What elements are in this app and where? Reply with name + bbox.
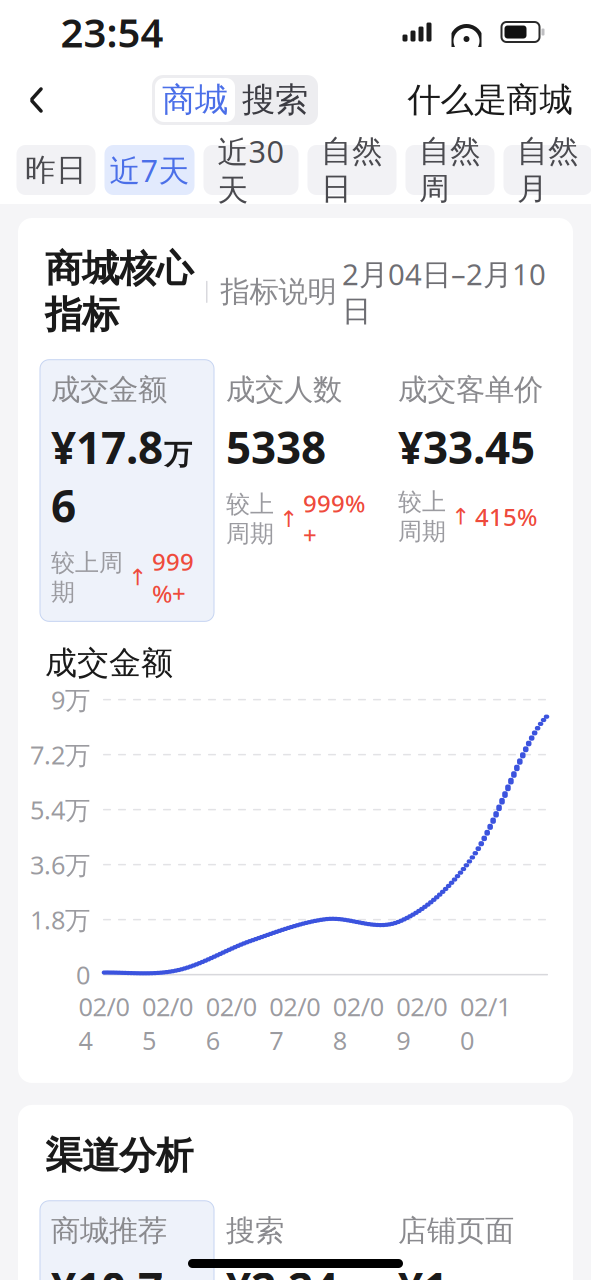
staticText: 999%+ <box>303 487 365 551</box>
staticText: 自然日 <box>321 132 383 208</box>
staticText: 7.2万 <box>30 738 90 771</box>
staticText: 1.8万 <box>30 903 90 936</box>
staticText: 02/07 <box>269 990 320 1057</box>
staticText: ¥1 <box>398 1259 448 1280</box>
button[interactable]: 返回 <box>10 74 62 126</box>
staticText: 较上周期 <box>226 490 274 549</box>
staticText: 渠道分析 <box>45 1133 193 1179</box>
button[interactable]: 近7天 <box>104 145 194 195</box>
staticText: 2月04日–2月10日 <box>342 254 546 329</box>
staticText: 搜索 <box>242 79 308 120</box>
staticText: 指标说明 <box>220 274 336 310</box>
staticText: 较上周期 <box>398 487 446 546</box>
button[interactable]: 成交金额 <box>40 360 214 621</box>
staticText: ↑ <box>279 506 298 532</box>
staticText: ¥10.76 <box>51 1259 163 1280</box>
staticText: 自然月 <box>517 132 579 208</box>
button[interactable]: 什么是商城 <box>407 74 591 126</box>
staticText: 02/08 <box>333 990 384 1057</box>
button[interactable]: 自然周 <box>405 145 494 195</box>
staticText: 0 <box>76 958 90 991</box>
staticText: ¥33.45 <box>398 418 535 476</box>
button[interactable]: 搜索 <box>235 78 315 122</box>
staticText: 999%+ <box>152 546 194 609</box>
staticText: 成交人数 <box>226 372 342 408</box>
button[interactable]: 成交人数 <box>226 372 390 551</box>
staticText: 5.4万 <box>30 793 90 826</box>
staticText: 3.6万 <box>30 848 90 881</box>
staticText: 02/09 <box>396 990 447 1057</box>
staticText: 搜索 <box>226 1213 284 1249</box>
staticText: 02/06 <box>206 990 257 1057</box>
button[interactable]: 指标说明 <box>220 274 336 310</box>
staticText: 成交客单价 <box>398 372 543 408</box>
staticText: 商城 <box>162 79 228 120</box>
staticText: 9万 <box>51 683 90 716</box>
staticText: 02/05 <box>142 990 193 1057</box>
staticText: 成交金额 <box>45 643 173 683</box>
staticText: 什么是商城 <box>407 79 572 120</box>
staticText: 较上周期 <box>51 548 123 607</box>
staticText: 成交金额 <box>51 372 167 408</box>
button[interactable]: 自然月 <box>503 145 591 195</box>
staticText: ¥2.24 <box>226 1259 338 1280</box>
staticText: 5338 <box>226 418 326 476</box>
button[interactable]: 商城 <box>155 78 235 122</box>
staticText: 23:54 <box>60 5 163 58</box>
staticText: 02/04 <box>78 990 129 1057</box>
button[interactable]: 店铺页面 <box>398 1213 562 1280</box>
button[interactable]: 自然日 <box>307 145 396 195</box>
button[interactable]: 昨日 <box>16 145 95 195</box>
staticText: ¥17.86 <box>51 418 163 535</box>
staticText: 自然周 <box>419 132 481 208</box>
staticText: 商城推荐 <box>51 1213 167 1249</box>
staticText: ↑ <box>451 504 470 529</box>
button[interactable]: 成交客单价 <box>398 372 562 546</box>
staticText: 近7天 <box>109 150 189 190</box>
button[interactable]: 商城推荐 <box>40 1201 214 1280</box>
staticText: 近30天 <box>217 131 284 209</box>
staticText: 店铺页面 <box>398 1213 514 1249</box>
staticText: 02/10 <box>460 990 511 1057</box>
staticText: ↑ <box>128 565 147 590</box>
staticText: 万 <box>164 437 192 472</box>
button[interactable]: 近30天 <box>203 145 298 195</box>
button[interactable]: 搜索 <box>226 1213 390 1280</box>
staticText: 商城核心指标 <box>45 246 193 338</box>
staticText: 昨日 <box>25 151 87 189</box>
staticText: 415% <box>475 501 537 533</box>
